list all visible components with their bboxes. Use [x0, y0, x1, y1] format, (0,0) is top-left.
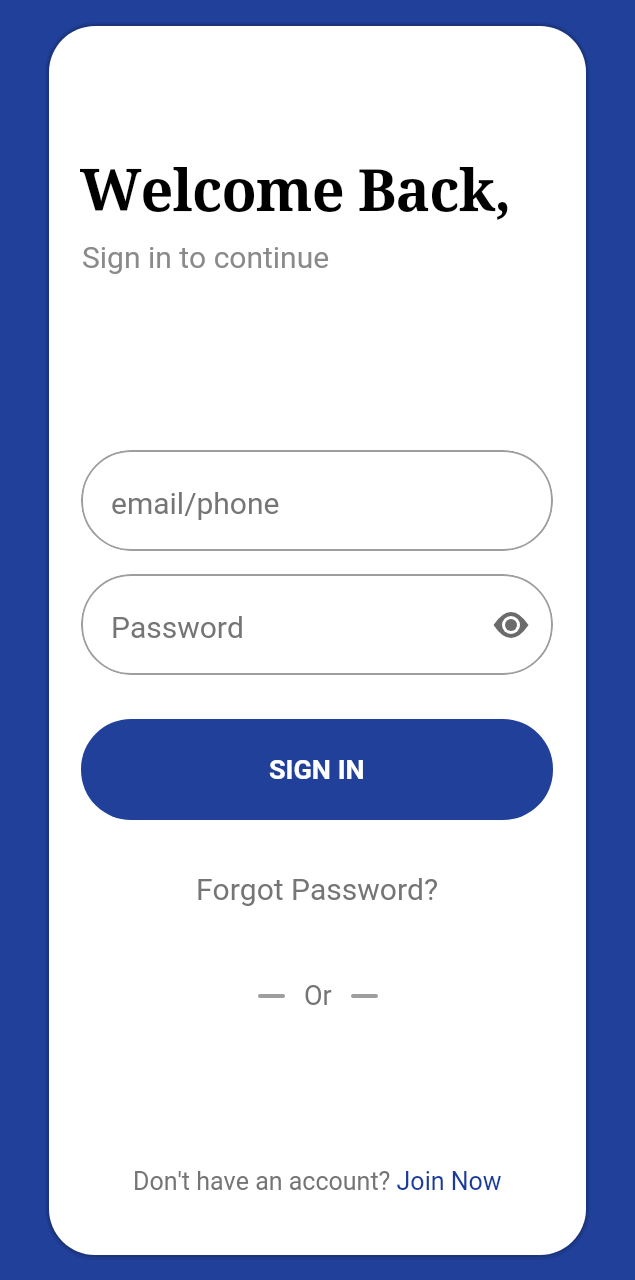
button[interactable]: Password — [81, 574, 553, 675]
staticText: Sign in to continue — [82, 240, 330, 275]
staticText: SIGN IN — [269, 754, 365, 786]
staticText: Welcome Back, — [80, 150, 511, 228]
staticText: Don't have an account? Join Now — [133, 1167, 502, 1196]
staticText: email/phone — [111, 486, 280, 521]
button[interactable]: SIGN IN — [81, 719, 553, 820]
button[interactable]: Don't have an account? Join Now — [49, 1167, 586, 1196]
button[interactable] — [489, 603, 533, 647]
staticText: Password — [111, 610, 244, 645]
staticText: Forgot Password? — [196, 872, 439, 907]
button[interactable]: Forgot Password? — [49, 872, 586, 907]
button[interactable]: email/phone — [81, 450, 553, 551]
staticText: Or — [304, 980, 332, 1012]
